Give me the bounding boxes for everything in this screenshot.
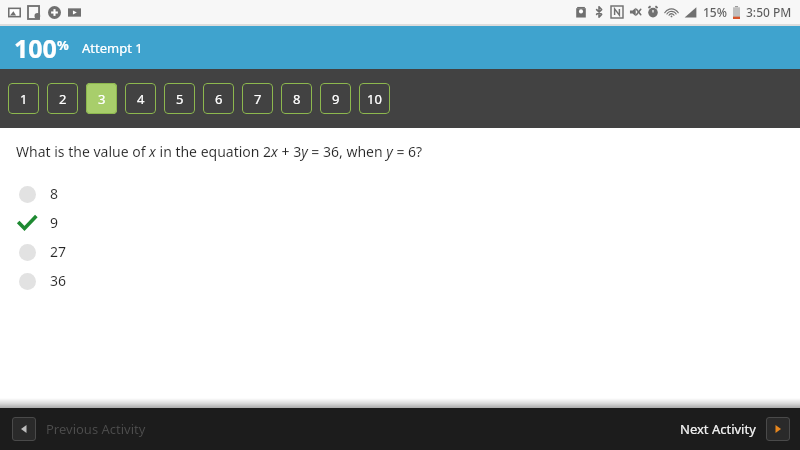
- staticText: 4: [137, 90, 145, 108]
- staticText: 15%: [703, 4, 727, 20]
- staticText: 6: [215, 90, 223, 108]
- staticText: Attempt 1: [82, 39, 143, 57]
- staticText: 5: [176, 90, 184, 108]
- staticText: 27: [50, 242, 67, 261]
- staticText: 36: [50, 271, 67, 290]
- button[interactable]: 27: [0, 237, 800, 266]
- button[interactable]: 36: [0, 266, 800, 295]
- staticText: Previous Activity: [46, 420, 146, 438]
- button[interactable]: 6: [203, 83, 234, 114]
- button[interactable]: Next Activity: [680, 417, 790, 441]
- button[interactable]: 1: [8, 83, 39, 114]
- staticText: 1: [20, 90, 28, 108]
- staticText: 2: [59, 90, 67, 108]
- staticText: What is the value of x in the equation 2…: [16, 142, 423, 161]
- other: Next Activity: [766, 417, 790, 441]
- staticText: 10: [367, 90, 382, 108]
- button[interactable]: 9: [0, 208, 800, 237]
- staticText: 9: [332, 90, 340, 108]
- staticText: 8: [50, 184, 59, 203]
- staticText: 9: [50, 213, 59, 232]
- button[interactable]: 2: [47, 83, 78, 114]
- staticText: 7: [254, 90, 262, 108]
- button[interactable]: Previous Activity: [12, 417, 146, 441]
- button[interactable]: 7: [242, 83, 273, 114]
- staticText: Next Activity: [680, 420, 756, 438]
- other: Previous Activity: [12, 417, 36, 441]
- button[interactable]: 9: [320, 83, 351, 114]
- button[interactable]: 4: [125, 83, 156, 114]
- button[interactable]: 8: [281, 83, 312, 114]
- button[interactable]: 3: [86, 83, 117, 114]
- button[interactable]: 5: [164, 83, 195, 114]
- staticText: 8: [293, 90, 301, 108]
- button[interactable]: 10: [359, 83, 390, 114]
- staticText: 100: [14, 31, 57, 65]
- staticText: 3:50 PM: [746, 4, 792, 20]
- staticText: 3: [98, 90, 106, 108]
- staticText: %: [57, 36, 69, 54]
- button[interactable]: 8: [0, 179, 800, 208]
